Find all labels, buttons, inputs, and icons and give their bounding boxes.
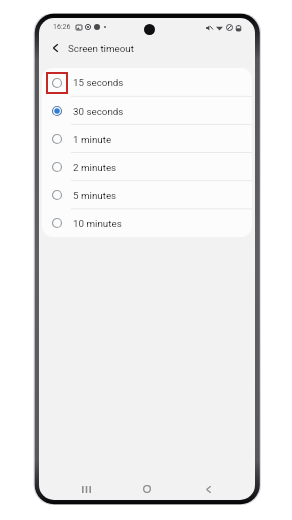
- staticText: 10 minutes: [73, 218, 122, 229]
- button[interactable]: Back: [191, 478, 225, 500]
- button[interactable]: Home: [130, 478, 164, 500]
- staticText: Screen timeout: [68, 43, 134, 54]
- button[interactable]: Recent apps: [69, 478, 103, 500]
- button[interactable]: Back: [42, 36, 68, 60]
- button[interactable]: 15 seconds: [42, 68, 252, 97]
- staticText: 2 minutes: [73, 162, 117, 173]
- button[interactable]: 1 minute: [42, 125, 252, 153]
- staticText: 16:26: [53, 23, 71, 31]
- staticText: 30 seconds: [73, 106, 124, 117]
- staticText: 5 minutes: [73, 190, 117, 201]
- button[interactable]: 10 minutes: [42, 209, 252, 237]
- staticText: 15 seconds: [73, 77, 124, 88]
- button[interactable]: 30 seconds: [42, 97, 252, 125]
- button[interactable]: 5 minutes: [42, 181, 252, 209]
- staticText: 1 minute: [73, 134, 112, 145]
- button[interactable]: 2 minutes: [42, 153, 252, 181]
